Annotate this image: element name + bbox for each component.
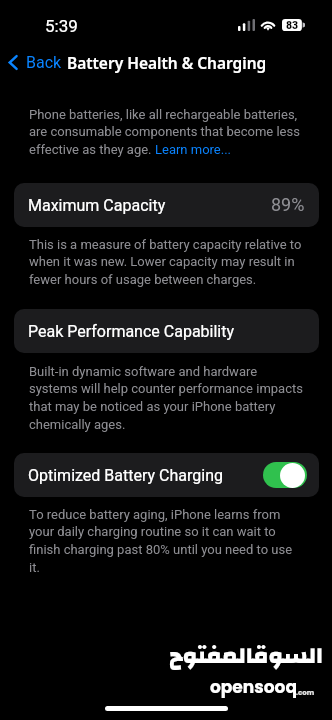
button[interactable]: Back [7, 53, 62, 72]
staticText: your daily charging routine so it can wa… [29, 524, 276, 539]
staticText: systems will help counter performance im… [29, 381, 303, 396]
staticText: Phone batteries, like all rechargeable b… [29, 107, 298, 122]
staticText: when it was new. Lower capacity may resu… [29, 254, 295, 269]
staticText: fewer hours of usage between charges. [29, 272, 257, 287]
staticText: السوقالمفتوح [169, 635, 324, 678]
staticText: effective as they age. [29, 142, 155, 157]
staticText: are consumable components that become le… [29, 124, 300, 139]
staticText: Peak Performance Capability [28, 322, 235, 341]
staticText: 5:39 [45, 16, 78, 36]
other: Back [7, 54, 19, 71]
other: Wi-Fi [260, 19, 276, 30]
staticText: 89% [271, 194, 305, 215]
staticText: .com [296, 688, 315, 698]
other: Cellular signal [238, 19, 255, 31]
staticText: Built-in dynamic software and hardware [29, 364, 258, 379]
button[interactable]: Peak Performance Capability [14, 309, 319, 353]
staticText: chemically ages. [29, 417, 126, 432]
button[interactable]: Maximum Capacity [14, 183, 319, 227]
staticText: it. [29, 560, 40, 575]
staticText: To reduce battery aging, iPhone learns f… [29, 507, 281, 522]
staticText: Maximum Capacity [28, 196, 166, 215]
button[interactable]: Optimized Battery Charging toggle [263, 462, 307, 488]
staticText: finish charging past 80% until you need … [29, 542, 293, 557]
staticText: that may be noticed as your iPhone batte… [29, 399, 276, 414]
staticText: Optimized Battery Charging [28, 466, 223, 485]
staticText: opensooq [210, 675, 297, 699]
button[interactable]: Learn more... [155, 142, 232, 157]
staticText: Learn more... [155, 142, 232, 157]
button[interactable]: Optimized Battery Charging [14, 453, 319, 497]
other: Battery 83 percent [282, 19, 305, 31]
staticText: 83 [286, 19, 299, 31]
staticText: Battery Health & Charging [67, 52, 267, 73]
staticText: This is a measure of battery capacity re… [29, 237, 302, 252]
staticText: Back [26, 53, 62, 72]
